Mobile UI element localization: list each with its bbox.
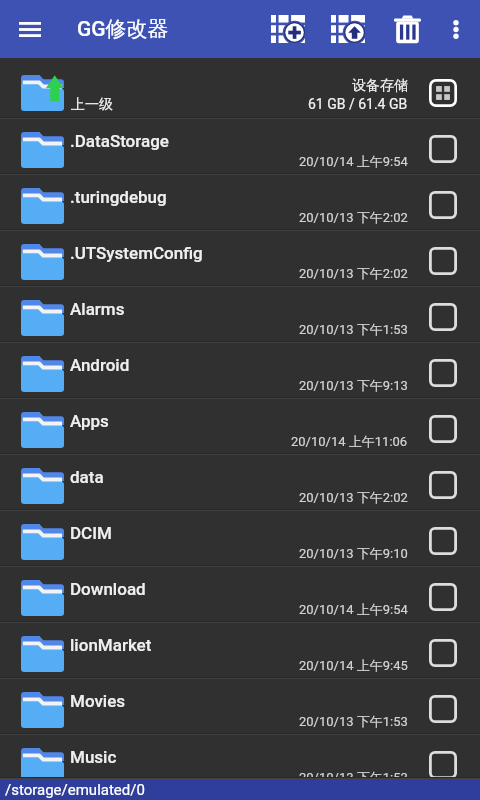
button[interactable]: Select .DataStorage bbox=[429, 135, 457, 163]
staticText: data bbox=[70, 467, 104, 487]
button[interactable]: /storage/emulated/0 bbox=[0, 779, 480, 800]
staticText: GG修改器 bbox=[77, 16, 169, 42]
button[interactable]: DCIM bbox=[0, 511, 480, 567]
staticText: 上一级 bbox=[71, 96, 113, 114]
staticText: 20/10/13 下午2:02 bbox=[299, 209, 408, 225]
button[interactable]: Download bbox=[0, 567, 480, 623]
button[interactable]: Select Download bbox=[429, 583, 457, 611]
staticText: 20/10/14 上午9:54 bbox=[299, 601, 408, 617]
button[interactable]: Alarms bbox=[0, 287, 480, 343]
staticText: 设备存储 bbox=[352, 77, 408, 95]
button[interactable]: Music bbox=[0, 735, 480, 779]
staticText: .UTSystemConfig bbox=[70, 243, 203, 263]
button[interactable]: .DataStorage bbox=[0, 119, 480, 175]
staticText: 20/10/13 下午1:53 bbox=[299, 321, 408, 337]
button[interactable]: More options bbox=[436, 0, 476, 58]
button[interactable]: lionMarket bbox=[0, 623, 480, 679]
button[interactable]: Grid view bbox=[429, 79, 457, 107]
staticText: 20/10/13 下午2:02 bbox=[299, 265, 408, 281]
button[interactable]: Select DCIM bbox=[429, 527, 457, 555]
button[interactable]: Select Movies bbox=[429, 695, 457, 723]
button[interactable]: Select .turingdebug bbox=[429, 191, 457, 219]
staticText: .turingdebug bbox=[70, 187, 167, 207]
staticText: Download bbox=[70, 579, 146, 599]
staticText: 20/10/13 下午2:02 bbox=[299, 489, 408, 505]
staticText: 20/10/13 下午9:10 bbox=[299, 545, 408, 561]
staticText: 61 GB / 61.4 GB bbox=[308, 96, 408, 112]
staticText: 20/10/13 下午1:53 bbox=[299, 713, 408, 729]
staticText: Music bbox=[70, 747, 117, 767]
button[interactable]: Movies bbox=[0, 679, 480, 735]
button[interactable]: .UTSystemConfig bbox=[0, 231, 480, 287]
button[interactable]: .turingdebug bbox=[0, 175, 480, 231]
button[interactable]: Select .UTSystemConfig bbox=[429, 247, 457, 275]
button[interactable]: Menu bbox=[8, 0, 52, 58]
button[interactable]: Delete bbox=[383, 0, 432, 58]
staticText: 20/10/13 下午9:13 bbox=[299, 377, 408, 393]
button[interactable]: Select data bbox=[429, 471, 457, 499]
button[interactable]: Android bbox=[0, 343, 480, 399]
staticText: Alarms bbox=[70, 299, 125, 319]
staticText: 20/10/13 下午1:53 bbox=[299, 769, 408, 785]
staticText: .DataStorage bbox=[70, 131, 169, 151]
staticText: DCIM bbox=[70, 523, 112, 543]
button[interactable]: Load saved list bbox=[324, 0, 372, 58]
button[interactable]: Select Alarms bbox=[429, 303, 457, 331]
staticText: 20/10/14 上午9:45 bbox=[299, 657, 408, 673]
button[interactable]: Select lionMarket bbox=[429, 639, 457, 667]
button[interactable]: Select Android bbox=[429, 359, 457, 387]
button[interactable]: Select Apps bbox=[429, 415, 457, 443]
staticText: 20/10/14 上午11:06 bbox=[291, 433, 408, 449]
staticText: Movies bbox=[70, 691, 126, 711]
staticText: lionMarket bbox=[70, 635, 152, 655]
staticText: /storage/emulated/0 bbox=[5, 781, 145, 799]
staticText: Apps bbox=[70, 411, 109, 431]
button[interactable]: Apps bbox=[0, 399, 480, 455]
staticText: 20/10/14 上午9:54 bbox=[299, 153, 408, 169]
button[interactable]: 上一级 bbox=[0, 58, 480, 119]
button[interactable]: data bbox=[0, 455, 480, 511]
button[interactable]: Select Music bbox=[429, 751, 457, 779]
staticText: Android bbox=[70, 355, 130, 375]
button[interactable]: Add saved list bbox=[264, 0, 312, 58]
